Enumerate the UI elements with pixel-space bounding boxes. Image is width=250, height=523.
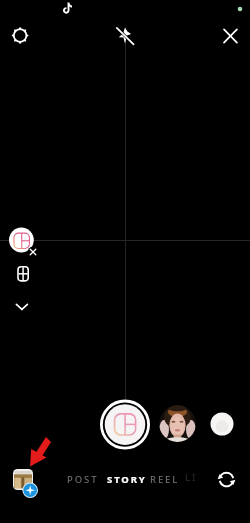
button[interactable]: Layout — [7, 226, 37, 256]
button[interactable]: Effects — [210, 412, 234, 436]
button[interactable]: More options — [12, 297, 32, 317]
button[interactable]: Grid layout — [12, 264, 32, 284]
button[interactable]: Capture — [99, 399, 151, 451]
button[interactable]: Gallery — [13, 469, 33, 490]
staticText: POST — [67, 473, 99, 486]
button[interactable]: Camera settings — [8, 24, 32, 48]
button[interactable]: Flash off — [113, 24, 137, 48]
button[interactable]: STORY — [106, 471, 147, 487]
button[interactable]: POST — [66, 471, 99, 487]
button[interactable]: Close — [218, 24, 242, 48]
button[interactable]: Switch camera — [217, 470, 236, 489]
staticText: REEL — [150, 473, 180, 486]
button[interactable]: Your story — [159, 405, 196, 442]
staticText: LIVE — [185, 471, 198, 487]
button[interactable]: LIVE — [185, 471, 198, 487]
button[interactable]: REEL — [148, 471, 181, 487]
staticText: STORY — [107, 473, 147, 486]
